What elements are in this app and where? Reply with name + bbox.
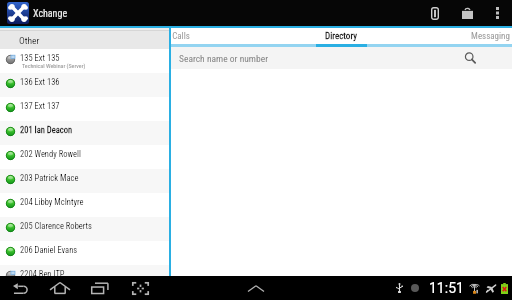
staticText: 205 Clarence Roberts [20, 221, 92, 231]
staticText: 11:51 [429, 280, 464, 296]
staticText: 204 Libby McIntyre [20, 197, 84, 207]
button[interactable]: Device [419, 0, 451, 26]
button[interactable]: 136 Ext 136 [0, 73, 169, 97]
button[interactable]: 202 Wendy Rowell [0, 145, 169, 169]
button[interactable]: Expand status bar [242, 276, 270, 300]
button[interactable]: Messaging [414, 28, 512, 44]
staticText: Search name or number [179, 53, 269, 64]
button[interactable]: 137 Ext 137 [0, 97, 169, 121]
staticText: Directory [325, 31, 357, 42]
button[interactable]: Search [462, 50, 478, 66]
staticText: 201 Ian Deacon [20, 125, 73, 135]
staticText: 137 Ext 137 [20, 101, 60, 111]
staticText: 203 Patrick Mace [20, 173, 79, 183]
button[interactable]: 135 Ext 135 [0, 49, 169, 73]
staticText: 206 Daniel Evans [20, 245, 78, 255]
button[interactable]: Calls [105, 28, 257, 44]
staticText: Other [19, 35, 40, 46]
staticText: 136 Ext 136 [20, 77, 60, 87]
staticText: 202 Wendy Rowell [20, 149, 81, 159]
button[interactable]: Home [46, 276, 74, 300]
button[interactable]: 2204 Ben ITP [0, 265, 169, 276]
staticText: Messaging [471, 31, 510, 42]
button[interactable]: More options [483, 0, 512, 26]
button[interactable]: Other [0, 31, 169, 49]
button[interactable]: Search name or number [171, 47, 512, 69]
button[interactable]: Back [7, 276, 35, 300]
button[interactable]: Directory [265, 28, 417, 44]
button[interactable]: 201 Ian Deacon [0, 121, 169, 145]
button[interactable]: Shrink screen [126, 276, 154, 300]
button[interactable]: Recent apps [86, 276, 114, 300]
staticText: Calls [172, 31, 190, 42]
button[interactable]: Briefcase [451, 0, 483, 26]
button[interactable]: 204 Libby McIntyre [0, 193, 169, 217]
staticText: Technical Webinar (Server) [22, 62, 86, 69]
staticText: 135 Ext 135 [20, 53, 60, 63]
staticText: Xchange [33, 8, 68, 20]
staticText: Meeting [19, 21, 50, 23]
button[interactable]: 203 Patrick Mace [0, 169, 169, 193]
button[interactable]: 205 Clarence Roberts [0, 217, 169, 241]
staticText: 2204 Ben ITP [20, 269, 65, 279]
button[interactable]: 206 Daniel Evans [0, 241, 169, 265]
